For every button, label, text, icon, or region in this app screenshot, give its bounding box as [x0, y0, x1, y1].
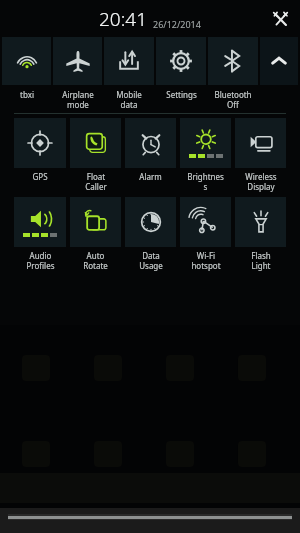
button[interactable]: Collapse notification shade [0, 508, 300, 533]
button[interactable]: Airplane mode [52, 37, 103, 110]
staticText: Brightnes s [187, 171, 224, 192]
staticText: Wi-Fi hotspot [191, 250, 221, 271]
button[interactable]: Wi-Fi hotspot [178, 197, 233, 271]
staticText: Data Usage [139, 250, 163, 271]
staticText: Auto Rotate [83, 250, 108, 271]
button[interactable]: Auto Rotate [68, 197, 123, 271]
button[interactable]: Wireless Display [233, 118, 288, 192]
staticText: 26/12/2014 [153, 18, 201, 30]
button[interactable]: Flash Light [233, 197, 288, 271]
button[interactable]: tbxi [1, 37, 52, 100]
staticText: Airplane mode [62, 89, 94, 110]
button[interactable]: Bluetooth Off [207, 37, 259, 110]
staticText: GPS [32, 171, 48, 182]
button[interactable]: Brightnes s [178, 118, 233, 192]
button[interactable]: Settings [155, 37, 207, 100]
button[interactable]: GPS [12, 118, 68, 182]
staticText: Bluetooth Off [214, 89, 252, 110]
staticText: Float Caller [85, 171, 107, 192]
button[interactable]: Alarm [123, 118, 178, 182]
staticText: Mobile data [116, 89, 142, 110]
staticText: Alarm [139, 171, 162, 182]
staticText: 20:41 [99, 6, 148, 32]
staticText: Wireless Display [245, 171, 277, 192]
staticText: Settings [166, 89, 197, 100]
button[interactable]: Collapse quick settings [260, 37, 298, 85]
button[interactable]: Audio Profiles [12, 197, 68, 271]
button[interactable]: Float Caller [68, 118, 123, 192]
button[interactable]: Mobile data [103, 37, 155, 110]
staticText: Audio Profiles [26, 250, 55, 271]
staticText: Flash Light [251, 250, 271, 271]
button[interactable]: Settings shortcut [267, 6, 293, 32]
staticText: tbxi [20, 89, 34, 100]
button[interactable]: Data Usage [123, 197, 178, 271]
